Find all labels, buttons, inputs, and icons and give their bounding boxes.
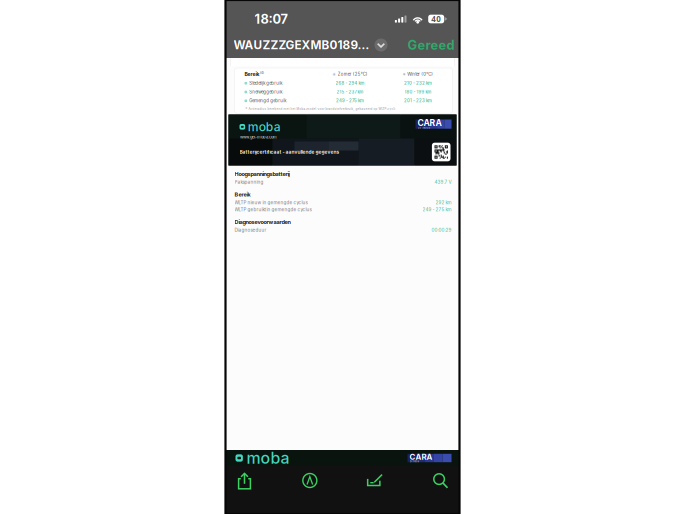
staticText: 292 km [435, 200, 451, 205]
staticText: CARA [417, 118, 441, 128]
staticText: CARA [409, 452, 432, 462]
staticText: Bereik [234, 191, 250, 198]
staticText: 439.7 V [434, 179, 451, 185]
staticText: Diagnoseduur [234, 227, 266, 233]
staticText: Zomer (25°C) [338, 72, 368, 77]
staticText: 268 - 294 km [335, 81, 364, 86]
staticText: (4) [260, 71, 264, 75]
staticText: Gemengd gebruik [249, 98, 286, 103]
staticText: ⁽⁴⁾ Actieradius berekend met het Moba-mo… [244, 107, 395, 111]
staticText: 18:07 [254, 11, 287, 27]
staticText: 00:00:29 [431, 227, 451, 233]
button[interactable]: Share [218, 466, 270, 496]
staticText: www.get-moba.com [240, 135, 277, 139]
staticText: WLTP nieuw in gemengde cyclus [234, 200, 307, 205]
staticText: 249 - 275 km [336, 98, 364, 103]
staticText: Stedelijk gebruik [249, 81, 282, 86]
staticText: Snelweggebruik [249, 89, 282, 95]
staticText: 210 - 232 km [404, 81, 432, 86]
staticText: Diagnosevoorwaarden [234, 219, 290, 225]
staticText: 249 - 275 km [422, 207, 451, 212]
button[interactable]: Markup [284, 466, 336, 496]
staticText: ❄ [403, 72, 406, 76]
button[interactable]: Sign [349, 466, 401, 496]
staticText: Batterijcertificaat - aanvullende gegeve… [239, 149, 339, 155]
staticText: Winter (0°C) [407, 72, 433, 77]
staticText: 180 - 199 km [404, 89, 431, 95]
staticText: by moba [417, 126, 430, 129]
staticText: moba [248, 119, 281, 134]
staticText: Gereed [407, 37, 454, 53]
button[interactable]: Gereed [407, 34, 454, 56]
staticText: 215 - 237 km [336, 89, 363, 95]
staticText: 201 - 223 km [404, 98, 432, 103]
staticText: WAUZZZGEXMB0189… [233, 38, 369, 52]
button[interactable]: WAUZZZGEXMB0189… [233, 35, 387, 55]
staticText: Pakspanning [234, 179, 263, 185]
staticText: Hoogspanningsbatterij [234, 171, 289, 177]
staticText: by moba [409, 460, 418, 463]
staticText: 40 [431, 14, 441, 24]
staticText: ☀ [332, 72, 336, 76]
staticText: Bereik [244, 71, 259, 77]
button[interactable]: Search [414, 466, 466, 496]
staticText: WLTP gebruikt in gemengde cyclus [234, 207, 311, 212]
staticText: moba [246, 448, 289, 468]
